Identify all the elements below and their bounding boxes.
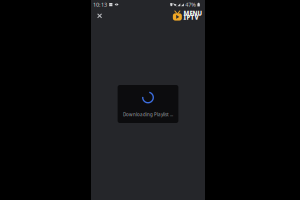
staticText: 47% bbox=[185, 1, 196, 8]
staticText: IPTV bbox=[183, 13, 198, 22]
button[interactable]: MENU IPTV bbox=[173, 10, 202, 21]
staticText: MENU bbox=[183, 9, 202, 18]
staticText: Downloading Playlist ... bbox=[123, 112, 173, 118]
staticText: 10:13 bbox=[93, 1, 107, 8]
button[interactable]: Close bbox=[94, 9, 107, 22]
